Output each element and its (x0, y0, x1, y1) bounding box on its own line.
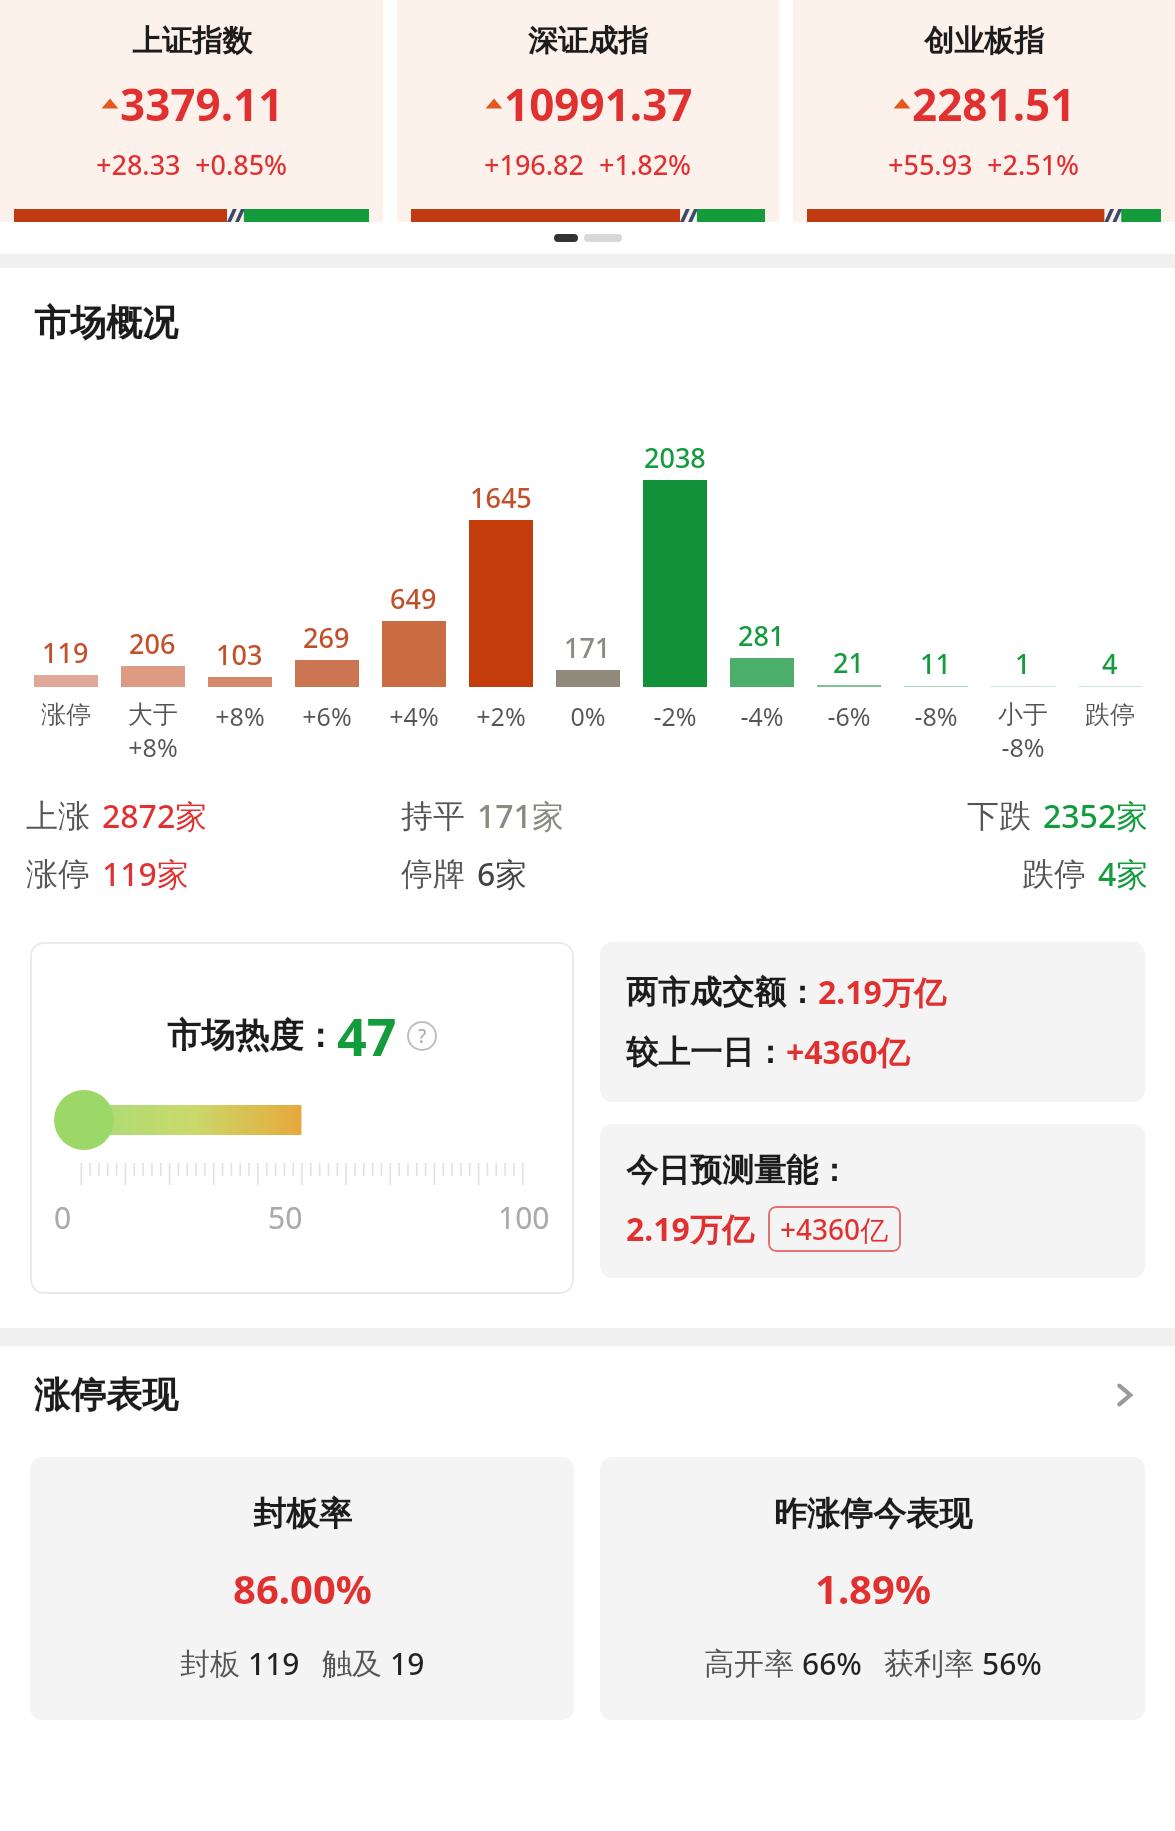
staticText: +8% (128, 730, 178, 764)
staticText: 21 (833, 644, 864, 681)
staticText: 4 (1102, 645, 1118, 682)
staticText: 涨停 (41, 699, 91, 730)
button[interactable]: 说明 (407, 1021, 437, 1051)
staticText: 86.00% (233, 1561, 372, 1615)
staticText: 获利率 (884, 1645, 974, 1683)
staticText: 119 (248, 1643, 300, 1684)
staticText: 下跌 (967, 796, 1031, 836)
staticText: 创业板指 (924, 22, 1044, 60)
staticText: 269 (303, 619, 350, 656)
staticText: 1.89% (815, 1561, 931, 1615)
staticText: 47 (337, 1000, 397, 1071)
staticText: 10991.37 (504, 74, 693, 134)
staticText: 0 (54, 1197, 72, 1238)
staticText: 206 (129, 625, 176, 662)
button[interactable]: 创业板指 (793, 0, 1175, 222)
button[interactable]: 市场热度： (30, 942, 574, 1294)
staticText: 19 (390, 1643, 425, 1684)
staticText: 2038 (644, 439, 706, 476)
staticText: 119家 (102, 852, 189, 896)
staticText: 封板率 (253, 1493, 352, 1535)
staticText: 56% (982, 1643, 1042, 1684)
staticText: +6% (302, 699, 352, 733)
staticText: 649 (390, 580, 437, 617)
button[interactable]: 涨停表现 (0, 1372, 1175, 1417)
staticText: 涨停表现 (34, 1372, 178, 1417)
staticText: 跌停 (1022, 854, 1086, 894)
staticText: 持平 (401, 796, 465, 836)
staticText: 2.19万亿 (626, 1207, 754, 1251)
other: 更多 (1107, 1378, 1141, 1412)
staticText: -6% (827, 699, 871, 733)
staticText: 大于 (128, 699, 178, 730)
staticText: 封板 (180, 1645, 240, 1683)
staticText: -8% (1001, 730, 1045, 764)
staticText: 4家 (1098, 852, 1149, 896)
staticText: 停牌 (401, 854, 465, 894)
staticText: 66% (802, 1643, 862, 1684)
staticText: -4% (740, 699, 784, 733)
staticText: 今日预测量能： (626, 1150, 850, 1190)
staticText: -8% (914, 699, 958, 733)
staticText: +196.82 (484, 146, 585, 183)
staticText: +28.33 (96, 146, 181, 183)
staticText: 涨停 (26, 854, 90, 894)
staticText: 100 (498, 1197, 550, 1238)
staticText: 1645 (470, 479, 532, 516)
button[interactable]: 深证成指 (397, 0, 779, 222)
staticText: 171 (564, 629, 611, 666)
staticText: 市场概况 (34, 300, 178, 345)
button[interactable]: 两市成交额： (600, 942, 1145, 1102)
staticText: 281 (738, 617, 785, 654)
staticText: 深证成指 (528, 22, 648, 60)
staticText: 0% (570, 699, 606, 733)
staticText: +2% (476, 699, 526, 733)
button[interactable]: 上证指数 (0, 0, 383, 222)
staticText: ? (418, 1023, 427, 1049)
staticText: 小于 (998, 699, 1048, 730)
staticText: 103 (216, 636, 263, 673)
staticText: +4% (389, 699, 439, 733)
staticText: -2% (653, 699, 697, 733)
button[interactable]: 昨涨停今表现 (600, 1457, 1145, 1720)
staticText: 昨涨停今表现 (774, 1493, 972, 1535)
staticText: 上涨 (26, 796, 90, 836)
button[interactable]: 封板率 (30, 1457, 574, 1720)
staticText: 6家 (477, 852, 528, 896)
staticText: 3379.11 (120, 74, 284, 134)
staticText: 171家 (477, 794, 564, 838)
staticText: +4360亿 (780, 1210, 889, 1248)
staticText: +2.51% (987, 146, 1080, 183)
button[interactable]: 今日预测量能： (600, 1124, 1145, 1278)
staticText: +1.82% (599, 146, 692, 183)
staticText: 较上一日： (626, 1032, 786, 1072)
staticText: 跌停 (1085, 699, 1135, 730)
staticText: 1 (1015, 645, 1031, 682)
staticText: 50 (268, 1197, 303, 1238)
staticText: +8% (215, 699, 265, 733)
staticText: 2.19万亿 (818, 970, 946, 1014)
staticText: 市场热度： (167, 1014, 337, 1057)
staticText: 2281.51 (912, 74, 1076, 134)
staticText: 119 (42, 634, 89, 671)
staticText: 2872家 (102, 794, 208, 838)
staticText: +55.93 (888, 146, 973, 183)
staticText: 11 (920, 645, 951, 682)
staticText: 2352家 (1043, 794, 1149, 838)
staticText: +0.85% (195, 146, 288, 183)
staticText: +4360亿 (786, 1030, 910, 1074)
staticText: 两市成交额： (626, 972, 818, 1012)
staticText: 触及 (322, 1645, 382, 1683)
staticText: 高开率 (704, 1645, 794, 1683)
staticText: 上证指数 (132, 22, 252, 60)
